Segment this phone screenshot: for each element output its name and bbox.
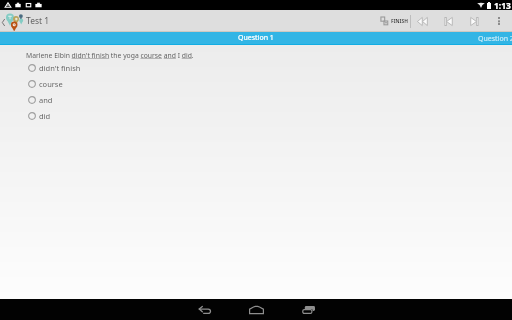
staticText: did <box>39 111 51 121</box>
staticText: 1:13 <box>494 0 511 10</box>
staticText: and <box>39 95 53 105</box>
button[interactable]: and <box>0 92 512 108</box>
button[interactable]: Question 2 <box>478 33 512 45</box>
button[interactable]: Recent apps <box>282 299 334 320</box>
staticText: Test 1 <box>26 15 50 27</box>
staticText: Question 2 <box>478 34 512 44</box>
button[interactable]: Last question <box>461 10 487 32</box>
button[interactable]: Back <box>178 299 230 320</box>
staticText: Question 1 <box>238 33 274 43</box>
staticText: course <box>39 79 63 89</box>
button[interactable]: More options <box>486 10 512 32</box>
button[interactable]: didn't finish <box>0 60 512 76</box>
staticText: didn't finish <box>39 63 81 73</box>
staticText: Marlene Elbin didn't finish the yoga cou… <box>26 51 194 60</box>
button[interactable]: First question <box>435 10 461 32</box>
button[interactable]: Previous question <box>409 10 435 32</box>
button[interactable]: course <box>0 76 512 92</box>
button[interactable]: Test 1 <box>0 10 50 32</box>
button[interactable]: FINISH <box>377 10 411 32</box>
button[interactable]: Home <box>230 299 282 320</box>
staticText: FINISH <box>391 18 408 25</box>
button[interactable]: did <box>0 108 512 124</box>
button[interactable]: Question 1 <box>0 32 512 44</box>
